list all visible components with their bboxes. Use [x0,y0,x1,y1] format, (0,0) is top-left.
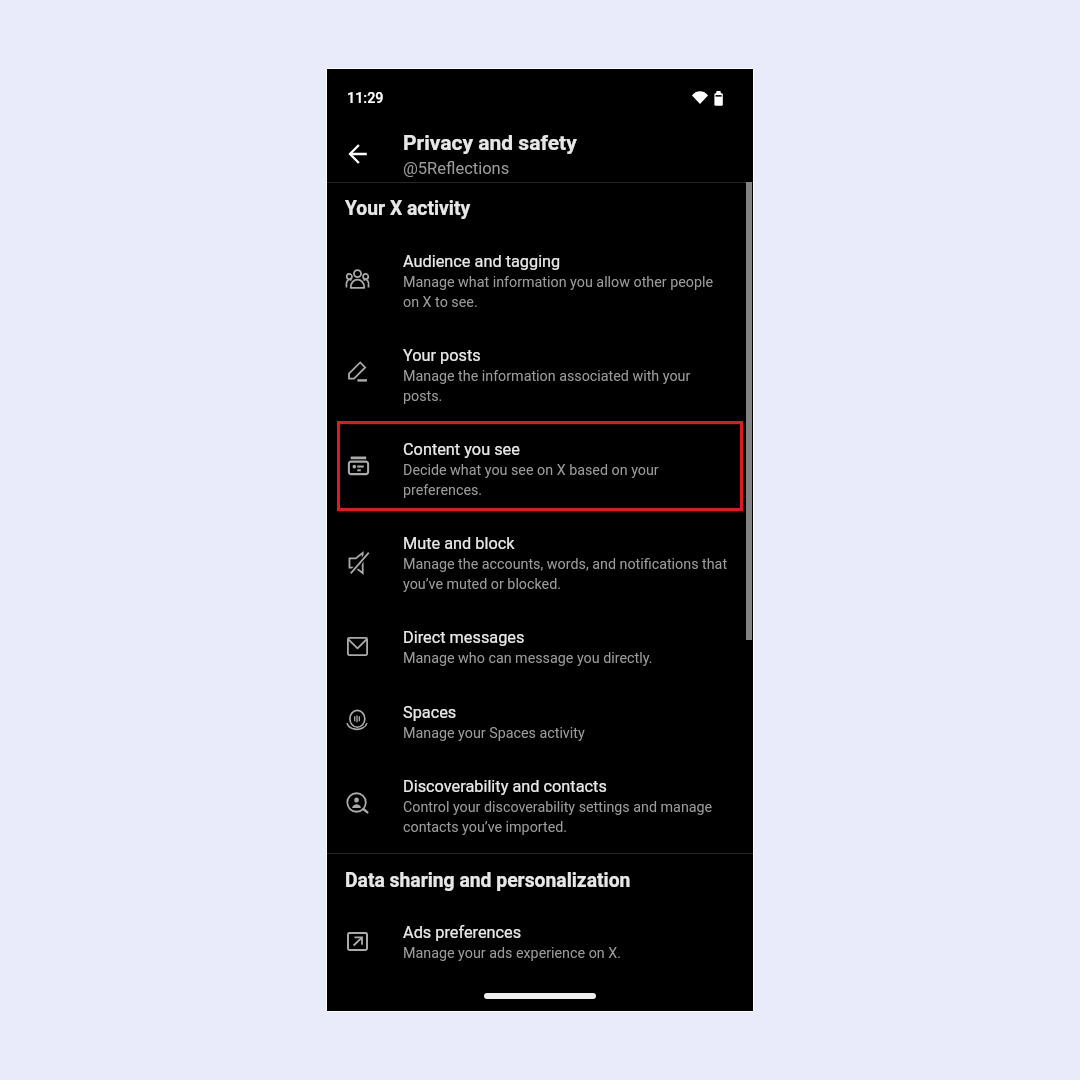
staticText: Manage your Spaces activity [403,722,585,742]
staticText: Privacy and safety [403,131,577,156]
staticText: Decide what you see on X based on your p… [403,459,731,499]
staticText: Audience and tagging [403,251,561,271]
staticText: Content you see [403,439,520,459]
button[interactable]: Your posts [337,327,743,417]
staticText: Direct messages [403,627,525,647]
button[interactable]: Spaces [337,684,743,758]
button[interactable]: Audience and tagging [337,233,743,323]
staticText: Data sharing and personalization [345,869,631,892]
staticText: Manage what information you allow other … [403,271,731,311]
staticText: Discoverability and contacts [403,776,607,796]
button[interactable]: Discoverability and contacts [337,758,743,848]
staticText: 11:29 [347,90,384,107]
staticText: Your X activity [345,197,471,220]
staticText: Manage the accounts, words, and notifica… [403,553,731,593]
staticText: Your posts [403,345,481,365]
staticText: Manage the information associated with y… [403,365,731,405]
button[interactable]: Back [334,130,381,177]
staticText: Mute and block [403,533,515,553]
staticText: @5Reflections [403,159,510,178]
staticText: Manage your ads experience on X. [403,942,621,962]
staticText: Control your discoverability settings an… [403,796,731,836]
staticText: Manage who can message you directly. [403,647,653,667]
staticText: Ads preferences [403,922,522,942]
button[interactable]: Content you see [337,421,743,511]
button[interactable]: Direct messages [337,609,743,683]
button[interactable]: Ads preferences [337,904,743,978]
button[interactable]: Mute and block [337,515,743,605]
staticText: Spaces [403,702,457,722]
